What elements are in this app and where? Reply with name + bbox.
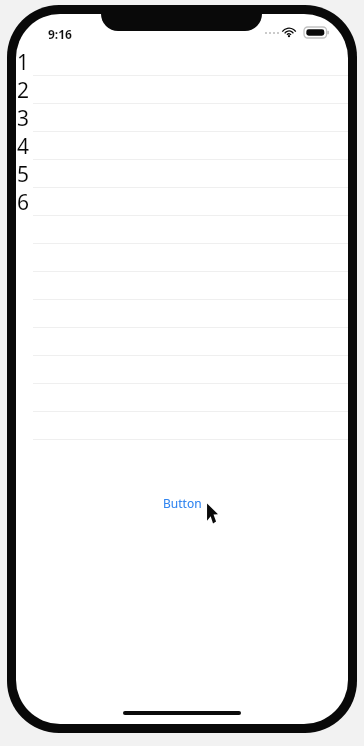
button[interactable]: 6 [16,188,348,216]
other: Pointer [206,503,221,524]
staticText: 1 [17,48,30,76]
staticText: 3 [17,104,30,132]
button[interactable]: 4 [16,132,348,160]
staticText: 5 [17,160,30,188]
button[interactable]: 5 [16,160,348,188]
button[interactable]: Button [153,491,212,515]
button[interactable]: 1 [16,48,348,76]
staticText: 9:16 [48,26,72,42]
button[interactable]: 2 [16,76,348,104]
staticText: 4 [17,132,30,160]
staticText: 2 [17,76,30,104]
button[interactable]: 3 [16,104,348,132]
staticText: Button [163,495,202,511]
staticText: 6 [17,188,30,216]
